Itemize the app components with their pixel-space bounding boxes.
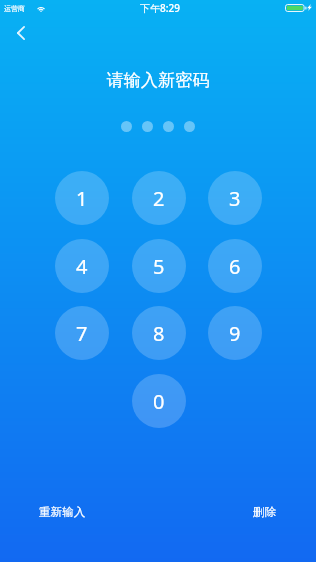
button[interactable]: 1	[55, 171, 109, 225]
button[interactable]: 2	[132, 171, 186, 225]
button[interactable]: Back	[4, 16, 38, 50]
button[interactable]: 5	[132, 239, 186, 293]
button[interactable]: 4	[55, 239, 109, 293]
button[interactable]: 6	[208, 239, 262, 293]
staticText: 4	[76, 253, 88, 280]
staticText: 删除	[253, 505, 277, 520]
staticText: 下午8:29	[140, 1, 180, 15]
staticText: 重新输入	[39, 505, 86, 520]
staticText: 0	[153, 388, 165, 415]
staticText: 1	[76, 185, 88, 212]
staticText: 5	[153, 253, 165, 280]
staticText: 9	[229, 320, 241, 347]
staticText: 请输入新密码	[106, 69, 210, 91]
button[interactable]: 删除	[243, 499, 287, 526]
staticText: 6	[229, 253, 241, 280]
other: Wi-Fi	[36, 4, 46, 12]
staticText: 8	[153, 320, 165, 347]
staticText: 7	[76, 320, 88, 347]
button[interactable]: 3	[208, 171, 262, 225]
button[interactable]: 0	[132, 374, 186, 428]
button[interactable]: 8	[132, 306, 186, 360]
button[interactable]: 9	[208, 306, 262, 360]
button[interactable]: 重新输入	[29, 499, 96, 526]
other: Battery charging	[285, 4, 307, 12]
staticText: 3	[229, 185, 241, 212]
button[interactable]: 7	[55, 306, 109, 360]
staticText: 2	[153, 185, 165, 212]
staticText: 运营商	[4, 4, 25, 13]
